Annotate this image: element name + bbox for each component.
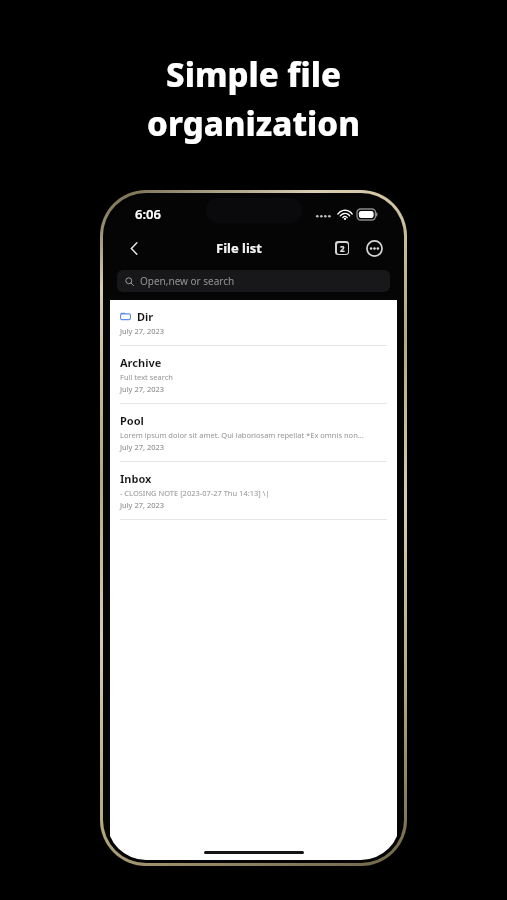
staticText: July 27, 2023 xyxy=(120,500,165,510)
staticText: Archive xyxy=(120,355,162,370)
staticText: 6:06 xyxy=(135,205,161,223)
staticText: - CLOSING NOTE [2023-07-27 Thu 14:13] \| xyxy=(120,488,270,498)
button[interactable]: Inbox xyxy=(110,462,397,519)
staticText: Pool xyxy=(120,413,144,428)
staticText: Dir xyxy=(137,309,154,324)
button[interactable]: Archive xyxy=(110,346,397,403)
staticText: July 27, 2023 xyxy=(120,384,165,394)
staticText: July 27, 2023 xyxy=(120,326,165,336)
staticText: Full text search xyxy=(120,372,173,382)
staticText: Lorem ipsum dolor sit amet. Qui laborios… xyxy=(120,430,364,440)
staticText: July 27, 2023 xyxy=(120,442,165,452)
button[interactable]: Dir xyxy=(110,300,397,345)
button[interactable]: More options xyxy=(360,234,388,262)
staticText: Open,new or search xyxy=(140,274,235,288)
staticText: organization xyxy=(147,101,360,146)
button[interactable]: Open,new or search xyxy=(117,270,390,292)
staticText: Inbox xyxy=(120,471,152,486)
button[interactable]: Pool xyxy=(110,404,397,461)
staticText: 2 xyxy=(340,243,345,254)
button[interactable]: Tabs, 2 open xyxy=(328,234,356,262)
button[interactable]: Back xyxy=(119,233,149,263)
staticText: File list xyxy=(216,239,262,257)
staticText: Simple file xyxy=(166,52,341,97)
